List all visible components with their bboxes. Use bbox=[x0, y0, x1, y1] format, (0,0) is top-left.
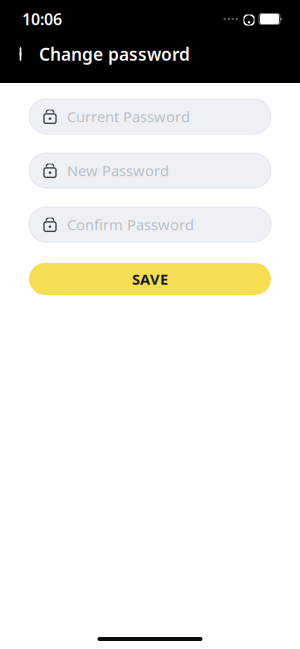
staticText: 10:06 bbox=[22, 8, 62, 30]
button[interactable]: SAVE bbox=[29, 263, 271, 295]
staticText: Change password bbox=[39, 42, 190, 65]
button[interactable]: Confirm Password bbox=[29, 207, 271, 242]
button[interactable]: Back bbox=[0, 40, 33, 68]
button[interactable]: Current Password bbox=[29, 99, 271, 134]
button[interactable]: New Password bbox=[29, 153, 271, 188]
staticText: SAVE bbox=[132, 269, 168, 289]
staticText: New Password bbox=[67, 161, 169, 180]
staticText: Current Password bbox=[67, 107, 190, 126]
staticText: Confirm Password bbox=[67, 215, 194, 234]
